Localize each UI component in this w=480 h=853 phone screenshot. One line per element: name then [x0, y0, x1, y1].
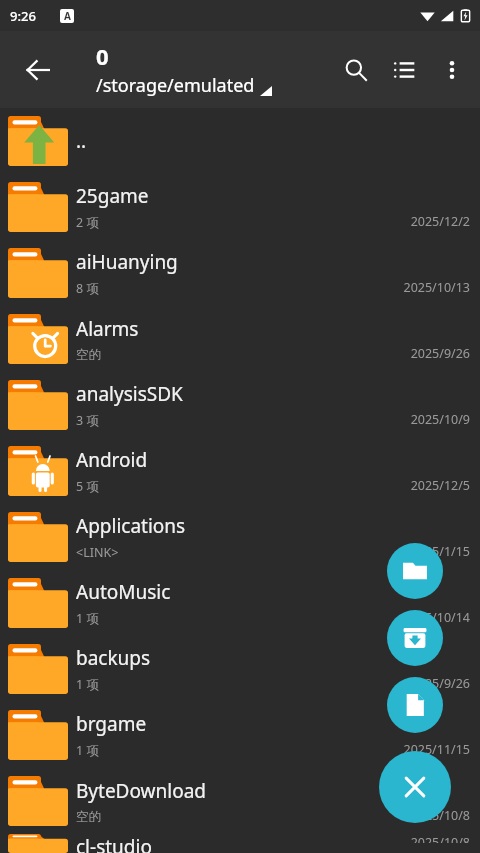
button[interactable]: analysisSDK — [0, 372, 480, 438]
staticText: Applications — [76, 513, 186, 539]
staticText: <LINK> — [76, 544, 119, 561]
button[interactable]: Search — [332, 46, 380, 94]
staticText: 8 项 — [76, 280, 99, 297]
staticText: 2025/12/2 — [410, 213, 470, 230]
button[interactable]: .. — [0, 108, 480, 174]
button[interactable]: New file — [387, 677, 443, 733]
staticText: 9:26 — [10, 7, 36, 25]
staticText: .. — [76, 128, 87, 154]
staticText: /storage/emulated — [96, 73, 255, 98]
staticText: brgame — [76, 711, 147, 737]
button[interactable]: More options — [428, 46, 476, 94]
staticText: 2025/10/13 — [403, 279, 470, 296]
staticText: Alarms — [76, 316, 139, 342]
button[interactable]: Back — [14, 46, 62, 94]
staticText: 25game — [76, 183, 149, 209]
staticText: 2025/10/9 — [410, 411, 470, 428]
button[interactable]: Alarms — [0, 306, 480, 372]
staticText: 2025/1/15 — [410, 543, 470, 560]
staticText: analysisSDK — [76, 381, 183, 407]
staticText: aiHuanying — [76, 249, 178, 275]
button[interactable]: Android — [0, 438, 480, 504]
staticText: 1 项 — [76, 742, 99, 759]
staticText: backups — [76, 645, 151, 671]
button[interactable]: AutoMusic — [0, 570, 480, 636]
staticText: 2025/11/15 — [403, 741, 470, 758]
button[interactable]: Close menu — [379, 751, 451, 823]
staticText: 空的 — [76, 347, 101, 363]
button[interactable]: brgame — [0, 702, 480, 768]
staticText: 5 项 — [76, 478, 99, 495]
staticText: 2025/10/14 — [403, 609, 470, 626]
staticText: ByteDownload — [76, 778, 207, 804]
button[interactable]: ByteDownload — [0, 768, 480, 834]
staticText: AutoMusic — [76, 579, 171, 605]
staticText: A — [64, 9, 71, 23]
staticText: cl-studio — [76, 834, 152, 853]
staticText: Android — [76, 447, 148, 473]
button[interactable]: Applications — [0, 504, 480, 570]
staticText: 0 — [96, 41, 109, 71]
button[interactable]: Extract archive — [387, 610, 443, 666]
button[interactable]: New folder — [387, 543, 443, 599]
staticText: 2025/10/8 — [410, 807, 470, 824]
button[interactable]: backups — [0, 636, 480, 702]
staticText: 1 项 — [76, 610, 99, 627]
button[interactable]: cl-studio — [0, 834, 480, 853]
button[interactable]: aiHuanying — [0, 240, 480, 306]
staticText: 1 项 — [76, 676, 99, 693]
staticText: 3 项 — [76, 412, 99, 429]
staticText: 2025/9/26 — [410, 675, 470, 692]
button[interactable]: View mode — [380, 46, 428, 94]
staticText: 2025/10/8 — [410, 834, 470, 843]
staticText: 2025/12/5 — [410, 477, 470, 494]
button[interactable]: 25game — [0, 174, 480, 240]
staticText: 空的 — [76, 809, 101, 825]
staticText: 2 项 — [76, 214, 99, 231]
staticText: 2025/9/26 — [410, 345, 470, 362]
button[interactable]: 0 — [96, 41, 272, 98]
